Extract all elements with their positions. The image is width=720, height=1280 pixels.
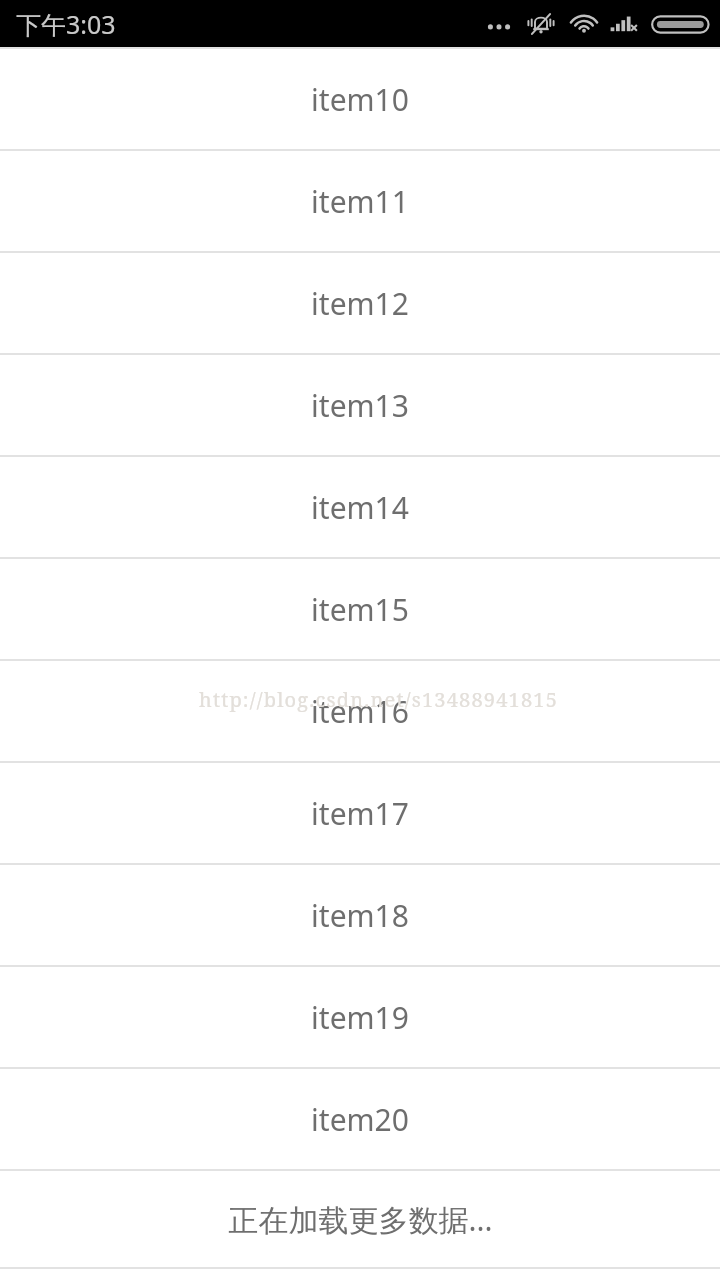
staticText: item17 [311,793,409,834]
button[interactable]: item10 [0,49,720,149]
button[interactable]: item17 [0,763,720,863]
staticText: item13 [311,385,409,426]
staticText: item20 [311,1099,409,1140]
staticText: item10 [311,79,409,120]
button[interactable]: 正在加载更多数据 [0,1171,720,1267]
staticText: http://blog.csdn.net/s13488941815 [199,686,559,713]
button[interactable]: item11 [0,151,720,251]
button[interactable]: item14 [0,457,720,557]
button[interactable]: item18 [0,865,720,965]
staticText: item14 [311,487,409,528]
staticText: 正在加载更多数据... [228,1199,493,1240]
staticText: item16 [311,691,409,732]
button[interactable]: item19 [0,967,720,1067]
staticText: item15 [311,589,409,630]
staticText: item12 [311,283,409,324]
button[interactable]: item20 [0,1069,720,1169]
button[interactable]: item12 [0,253,720,353]
staticText: item11 [311,181,409,222]
staticText: item19 [311,997,409,1038]
staticText: 下午3:03 [16,7,116,41]
button[interactable]: item13 [0,355,720,455]
button[interactable]: item15 [0,559,720,659]
button[interactable]: item16 [0,661,720,761]
staticText: item18 [311,895,409,936]
